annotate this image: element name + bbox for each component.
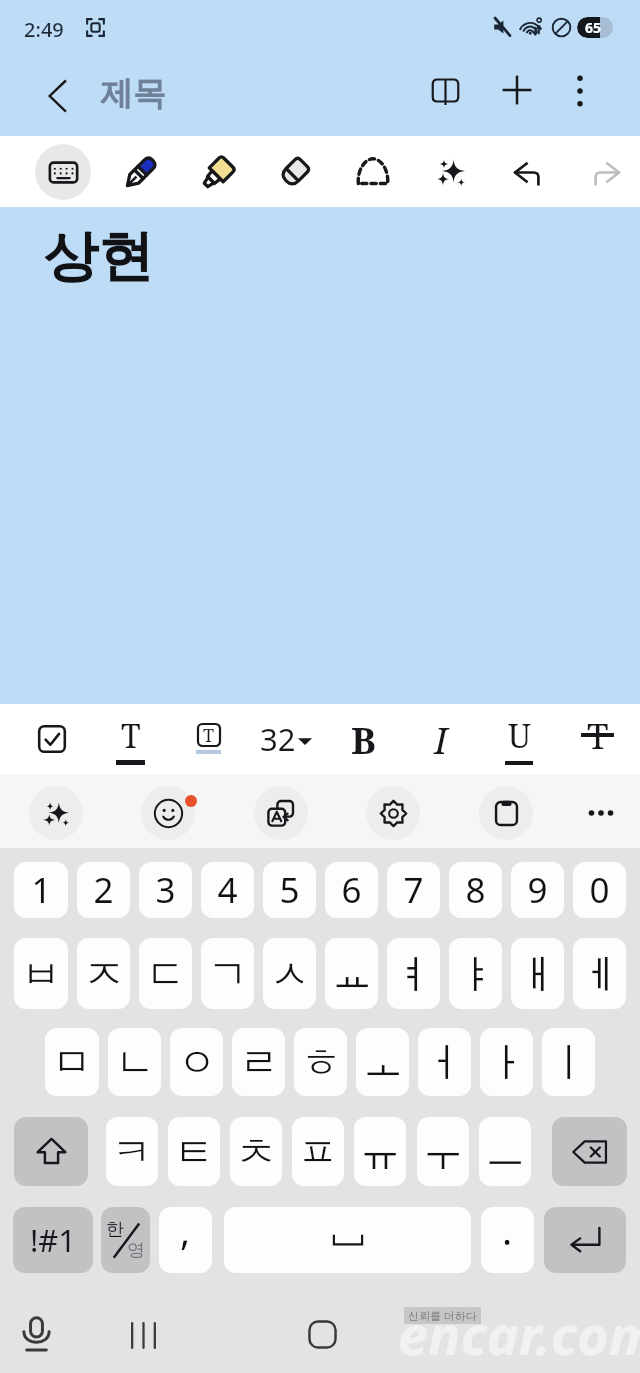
button[interactable]: ㅈ xyxy=(77,938,130,1009)
button[interactable]: Checklist xyxy=(18,704,86,774)
button[interactable]: 3 xyxy=(139,862,192,918)
button[interactable]: ㅛ xyxy=(325,938,378,1009)
button[interactable]: ㅅ xyxy=(263,938,316,1009)
button[interactable]: 2 xyxy=(77,862,130,918)
button[interactable]: Keyboard xyxy=(35,144,91,200)
staticText: . xyxy=(502,1207,513,1256)
button[interactable]: ㄱ xyxy=(201,938,254,1009)
button[interactable]: Eraser xyxy=(267,144,323,200)
button[interactable]: ㅕ xyxy=(387,938,440,1009)
staticText: 8 xyxy=(465,866,486,914)
button[interactable]: Recents xyxy=(119,1311,167,1359)
button[interactable]: ㅗ xyxy=(356,1028,409,1096)
staticText: ㅈ xyxy=(84,949,124,999)
button[interactable]: Text style xyxy=(96,704,164,774)
button[interactable]: ㅓ xyxy=(418,1028,471,1096)
button[interactable]: ㄴ xyxy=(108,1028,161,1096)
button[interactable]: ㅋ xyxy=(106,1117,158,1186)
button[interactable]: Translate xyxy=(254,786,308,840)
staticText: 6 xyxy=(341,866,362,914)
button[interactable]: ㅁ xyxy=(45,1028,99,1096)
staticText: ㅁ xyxy=(52,1037,92,1087)
button[interactable]: ㅠ xyxy=(354,1117,406,1186)
button[interactable]: ㅡ xyxy=(479,1117,531,1186)
button[interactable]: ㅂ xyxy=(14,938,68,1009)
button[interactable]: ㅇ xyxy=(170,1028,223,1096)
button[interactable]: Italic xyxy=(407,704,475,774)
button[interactable]: ㅊ xyxy=(230,1117,282,1186)
button[interactable]: Strikethrough xyxy=(563,704,631,774)
staticText: ㅔ xyxy=(580,949,620,999)
button[interactable]: AI xyxy=(29,786,83,840)
button[interactable]: Home xyxy=(298,1310,346,1358)
staticText: T xyxy=(203,723,215,745)
button[interactable]: Add xyxy=(492,65,542,115)
button[interactable]: ㄹ xyxy=(232,1028,285,1096)
button[interactable]: ㅍ xyxy=(292,1117,344,1186)
staticText: !#1 xyxy=(30,1219,77,1261)
button[interactable]: ㅑ xyxy=(449,938,502,1009)
button[interactable]: Emoji xyxy=(141,786,195,840)
button[interactable]: Space xyxy=(224,1207,471,1273)
button[interactable]: Font size xyxy=(252,704,320,774)
button[interactable]: Comma xyxy=(159,1207,212,1273)
staticText: T xyxy=(587,712,609,760)
staticText: 5 xyxy=(279,866,300,914)
button[interactable]: ㅏ xyxy=(480,1028,533,1096)
button[interactable]: More xyxy=(574,786,628,840)
staticText: 2:49 xyxy=(24,16,64,43)
staticText: encar.com xyxy=(398,1297,640,1371)
button[interactable]: Text colour xyxy=(174,704,242,774)
staticText: 9 xyxy=(527,866,548,914)
button[interactable]: 9 xyxy=(511,862,564,918)
button[interactable]: Clipboard xyxy=(479,786,533,840)
button[interactable]: Underline xyxy=(485,704,553,774)
button[interactable]: 6 xyxy=(325,862,378,918)
button[interactable]: 8 xyxy=(449,862,502,918)
button[interactable]: Shift xyxy=(14,1117,88,1186)
button[interactable]: Period xyxy=(481,1207,534,1273)
button[interactable]: Book view xyxy=(420,65,470,115)
button[interactable]: Enter xyxy=(544,1207,626,1273)
staticText: 1 xyxy=(31,866,52,914)
button[interactable]: Voice input xyxy=(12,1310,60,1358)
button[interactable]: Pen xyxy=(112,144,168,200)
button[interactable]: ㅔ xyxy=(573,938,626,1009)
button[interactable]: Highlighter xyxy=(190,144,246,200)
staticText: ㄷ xyxy=(146,949,186,999)
button[interactable]: 0 xyxy=(573,862,626,918)
staticText: ㅓ xyxy=(425,1037,465,1087)
staticText: ㅌ xyxy=(174,1127,214,1177)
button[interactable]: Backspace xyxy=(552,1117,627,1186)
staticText: ㄴ xyxy=(115,1037,155,1087)
staticText: 32 xyxy=(260,718,296,760)
staticText: B xyxy=(351,714,376,764)
button[interactable]: ㅣ xyxy=(542,1028,595,1096)
button[interactable]: 4 xyxy=(201,862,254,918)
button[interactable]: ㅐ xyxy=(511,938,564,1009)
button[interactable]: ㅜ xyxy=(417,1117,469,1186)
staticText: ㅗ xyxy=(363,1037,403,1087)
staticText: 영 xyxy=(127,1239,145,1262)
button[interactable]: AI xyxy=(423,144,479,200)
button[interactable]: 1 xyxy=(14,862,68,918)
button[interactable]: Settings xyxy=(366,786,420,840)
button[interactable]: Symbols xyxy=(13,1207,93,1273)
staticText: ㅍ xyxy=(298,1127,338,1177)
button[interactable]: More options xyxy=(555,66,605,116)
button[interactable]: ㄷ xyxy=(139,938,192,1009)
staticText: ㅅ xyxy=(270,949,310,999)
staticText: ㅊ xyxy=(236,1127,276,1177)
button[interactable]: Language xyxy=(101,1207,150,1273)
button[interactable]: Selection xyxy=(345,144,401,200)
button[interactable]: Undo xyxy=(500,144,556,200)
button[interactable]: 7 xyxy=(387,862,440,918)
staticText: ㅇ xyxy=(177,1037,217,1087)
button[interactable]: Bold xyxy=(329,704,397,774)
button[interactable]: 5 xyxy=(263,862,316,918)
staticText: ㅐ xyxy=(518,949,558,999)
button[interactable]: Back xyxy=(34,72,82,120)
button[interactable]: Redo xyxy=(577,144,633,200)
button[interactable]: ㅎ xyxy=(294,1028,347,1096)
button[interactable]: ㅌ xyxy=(168,1117,220,1186)
